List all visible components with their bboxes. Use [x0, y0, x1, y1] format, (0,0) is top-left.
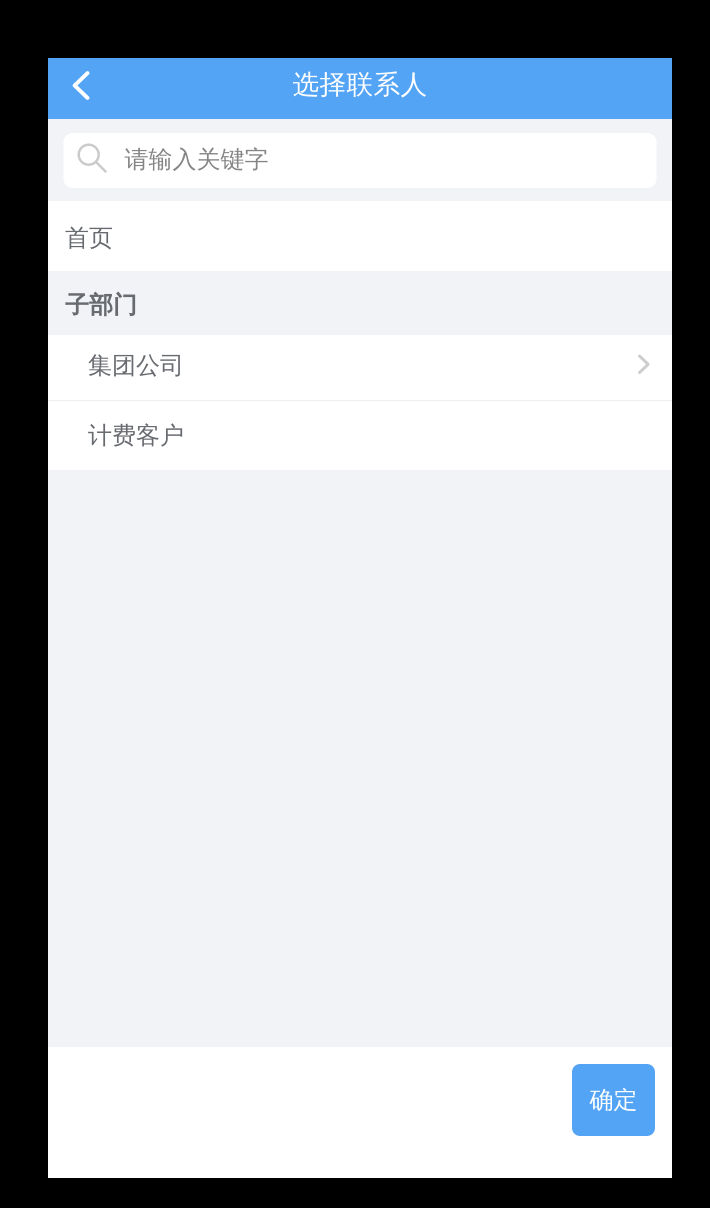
button[interactable]: 计费客户	[48, 401, 672, 470]
staticText: 首页	[65, 223, 113, 253]
staticText: 集团公司	[88, 351, 184, 380]
button[interactable]: 集团公司	[48, 335, 672, 400]
staticText: 计费客户	[88, 421, 184, 450]
staticText: 请输入关键字	[124, 145, 268, 174]
button[interactable]: 确定	[572, 1064, 655, 1136]
staticText: 子部门	[65, 290, 137, 320]
staticText: 确定	[589, 1085, 637, 1115]
staticText: 选择联系人	[292, 68, 427, 101]
button[interactable]: Back	[48, 58, 114, 119]
button[interactable]: 首页	[48, 201, 672, 271]
